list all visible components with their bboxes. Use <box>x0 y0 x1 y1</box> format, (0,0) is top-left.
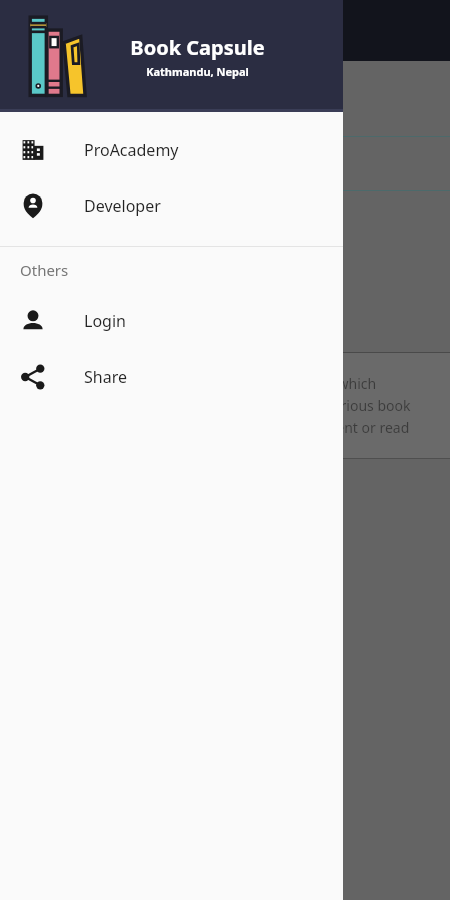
staticText: Login <box>84 310 126 332</box>
other: Developer <box>20 193 46 219</box>
staticText: Book Capsule <box>130 34 265 61</box>
button[interactable]: Developer <box>0 178 343 234</box>
button[interactable]: Share <box>0 349 343 405</box>
staticText: ProAcademy <box>84 139 179 161</box>
other: Login <box>20 308 46 334</box>
other: Share <box>20 364 46 390</box>
staticText: Developer <box>84 195 161 217</box>
button[interactable]: Login <box>0 293 343 349</box>
staticText: An application which helps to find vario… <box>240 374 411 437</box>
staticText: Kathmandu, Nepal <box>146 64 249 79</box>
other: ProAcademy <box>20 137 46 163</box>
staticText: Others <box>20 260 69 280</box>
staticText: Share <box>84 366 127 388</box>
button[interactable]: ProAcademy <box>0 122 343 178</box>
